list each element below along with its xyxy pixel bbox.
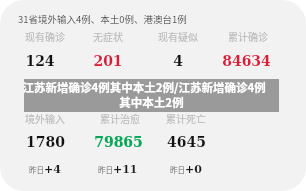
staticText: +4	[44, 163, 61, 176]
staticText: 累计确诊	[228, 29, 268, 43]
staticText: +0	[185, 163, 202, 176]
staticText: 累计治愈	[100, 111, 140, 125]
button[interactable]: 最新快讯	[24, 79, 279, 112]
staticText: 无症状	[93, 29, 123, 43]
staticText: 昨日	[170, 164, 185, 175]
staticText: 例江苏新增确诊4例其中本土2例/江苏新增确诊4例	[24, 79, 266, 96]
staticText: 31省境外输入4例、本土0例、港澳台1例	[18, 12, 187, 26]
staticText: +11	[113, 163, 138, 176]
button[interactable]: 31省境外输入4例、本土0例、港澳台1例	[18, 12, 187, 26]
staticText: 201	[93, 53, 123, 69]
staticText: 79865	[94, 134, 143, 150]
staticText: 其中本土2例	[119, 94, 184, 111]
staticText: 1780	[26, 134, 65, 150]
staticText: 84634	[222, 53, 271, 69]
staticText: 现有确诊	[25, 29, 65, 43]
staticText: 现有疑似	[158, 29, 198, 43]
staticText: 累计死亡	[166, 111, 206, 125]
staticText: 124	[25, 53, 55, 69]
staticText: 4645	[167, 134, 206, 150]
staticText: 昨日	[98, 164, 113, 175]
staticText: 昨日	[29, 164, 44, 175]
staticText: 境外输入	[25, 111, 65, 125]
staticText: 4	[173, 53, 183, 69]
